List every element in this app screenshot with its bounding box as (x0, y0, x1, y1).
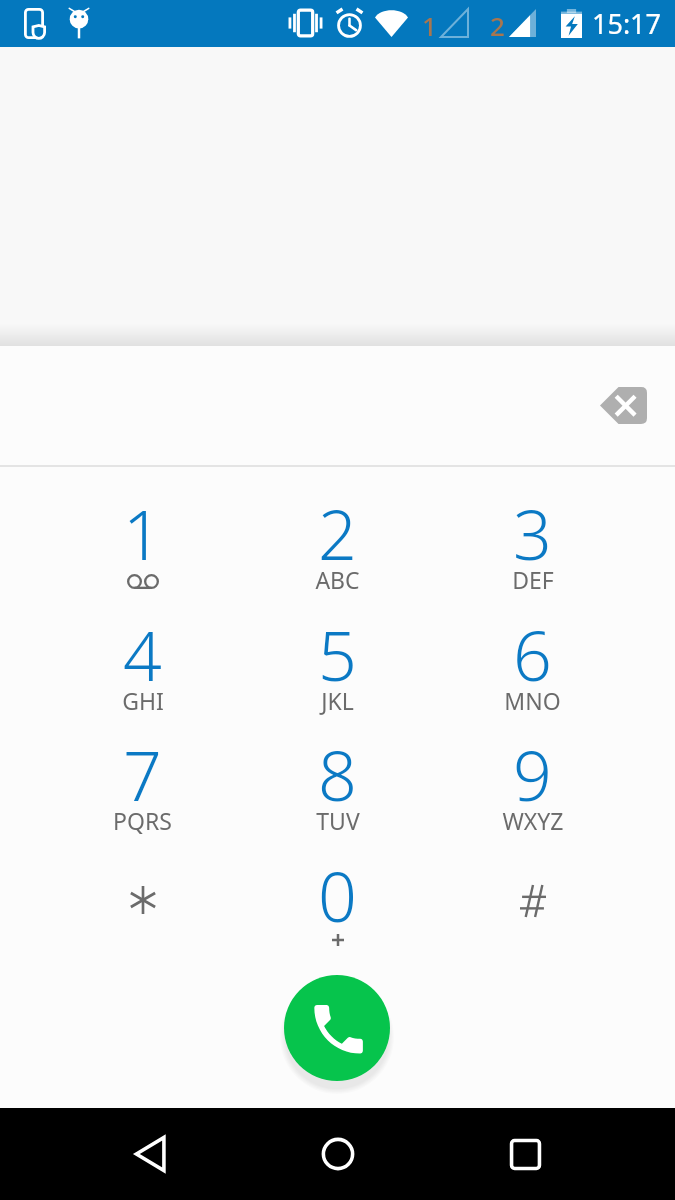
button[interactable]: 7 (45, 707, 240, 828)
button[interactable]: 3 (435, 466, 630, 587)
button[interactable]: 1 (45, 466, 240, 587)
button[interactable]: Call (284, 975, 390, 1081)
button[interactable]: Back (104, 1108, 198, 1200)
staticText: DEF (512, 564, 554, 595)
staticText: 1 (123, 487, 162, 580)
button[interactable]: 5 (240, 587, 435, 708)
staticText: 2 (490, 8, 505, 43)
staticText: ABC (315, 564, 360, 595)
staticText: 8 (318, 728, 357, 821)
staticText: 9 (513, 728, 552, 821)
staticText: JKL (321, 685, 354, 716)
staticText: 7 (123, 728, 162, 821)
staticText: 4 (123, 608, 162, 701)
button[interactable] (435, 828, 630, 949)
button[interactable]: Backspace (594, 380, 652, 430)
button[interactable]: 2 (240, 466, 435, 587)
button[interactable]: 0 (240, 828, 435, 949)
button[interactable]: 6 (435, 587, 630, 708)
staticText: 3 (513, 487, 552, 580)
button[interactable]: 4 (45, 587, 240, 708)
staticText: PQRS (113, 805, 172, 836)
staticText: TUV (316, 805, 360, 836)
staticText: MNO (504, 685, 561, 716)
button[interactable]: 8 (240, 707, 435, 828)
staticText: 2 (318, 487, 357, 580)
staticText: 0 (318, 849, 357, 942)
button[interactable]: Recents (478, 1108, 572, 1200)
staticText: WXYZ (502, 805, 564, 836)
staticText: GHI (122, 685, 164, 716)
staticText: 1 (422, 8, 437, 43)
staticText: 6 (513, 608, 552, 701)
button[interactable]: 9 (435, 707, 630, 828)
staticText: 15:17 (592, 5, 662, 42)
button[interactable] (45, 828, 240, 949)
button[interactable]: Home (291, 1108, 385, 1200)
staticText: 5 (318, 608, 357, 701)
